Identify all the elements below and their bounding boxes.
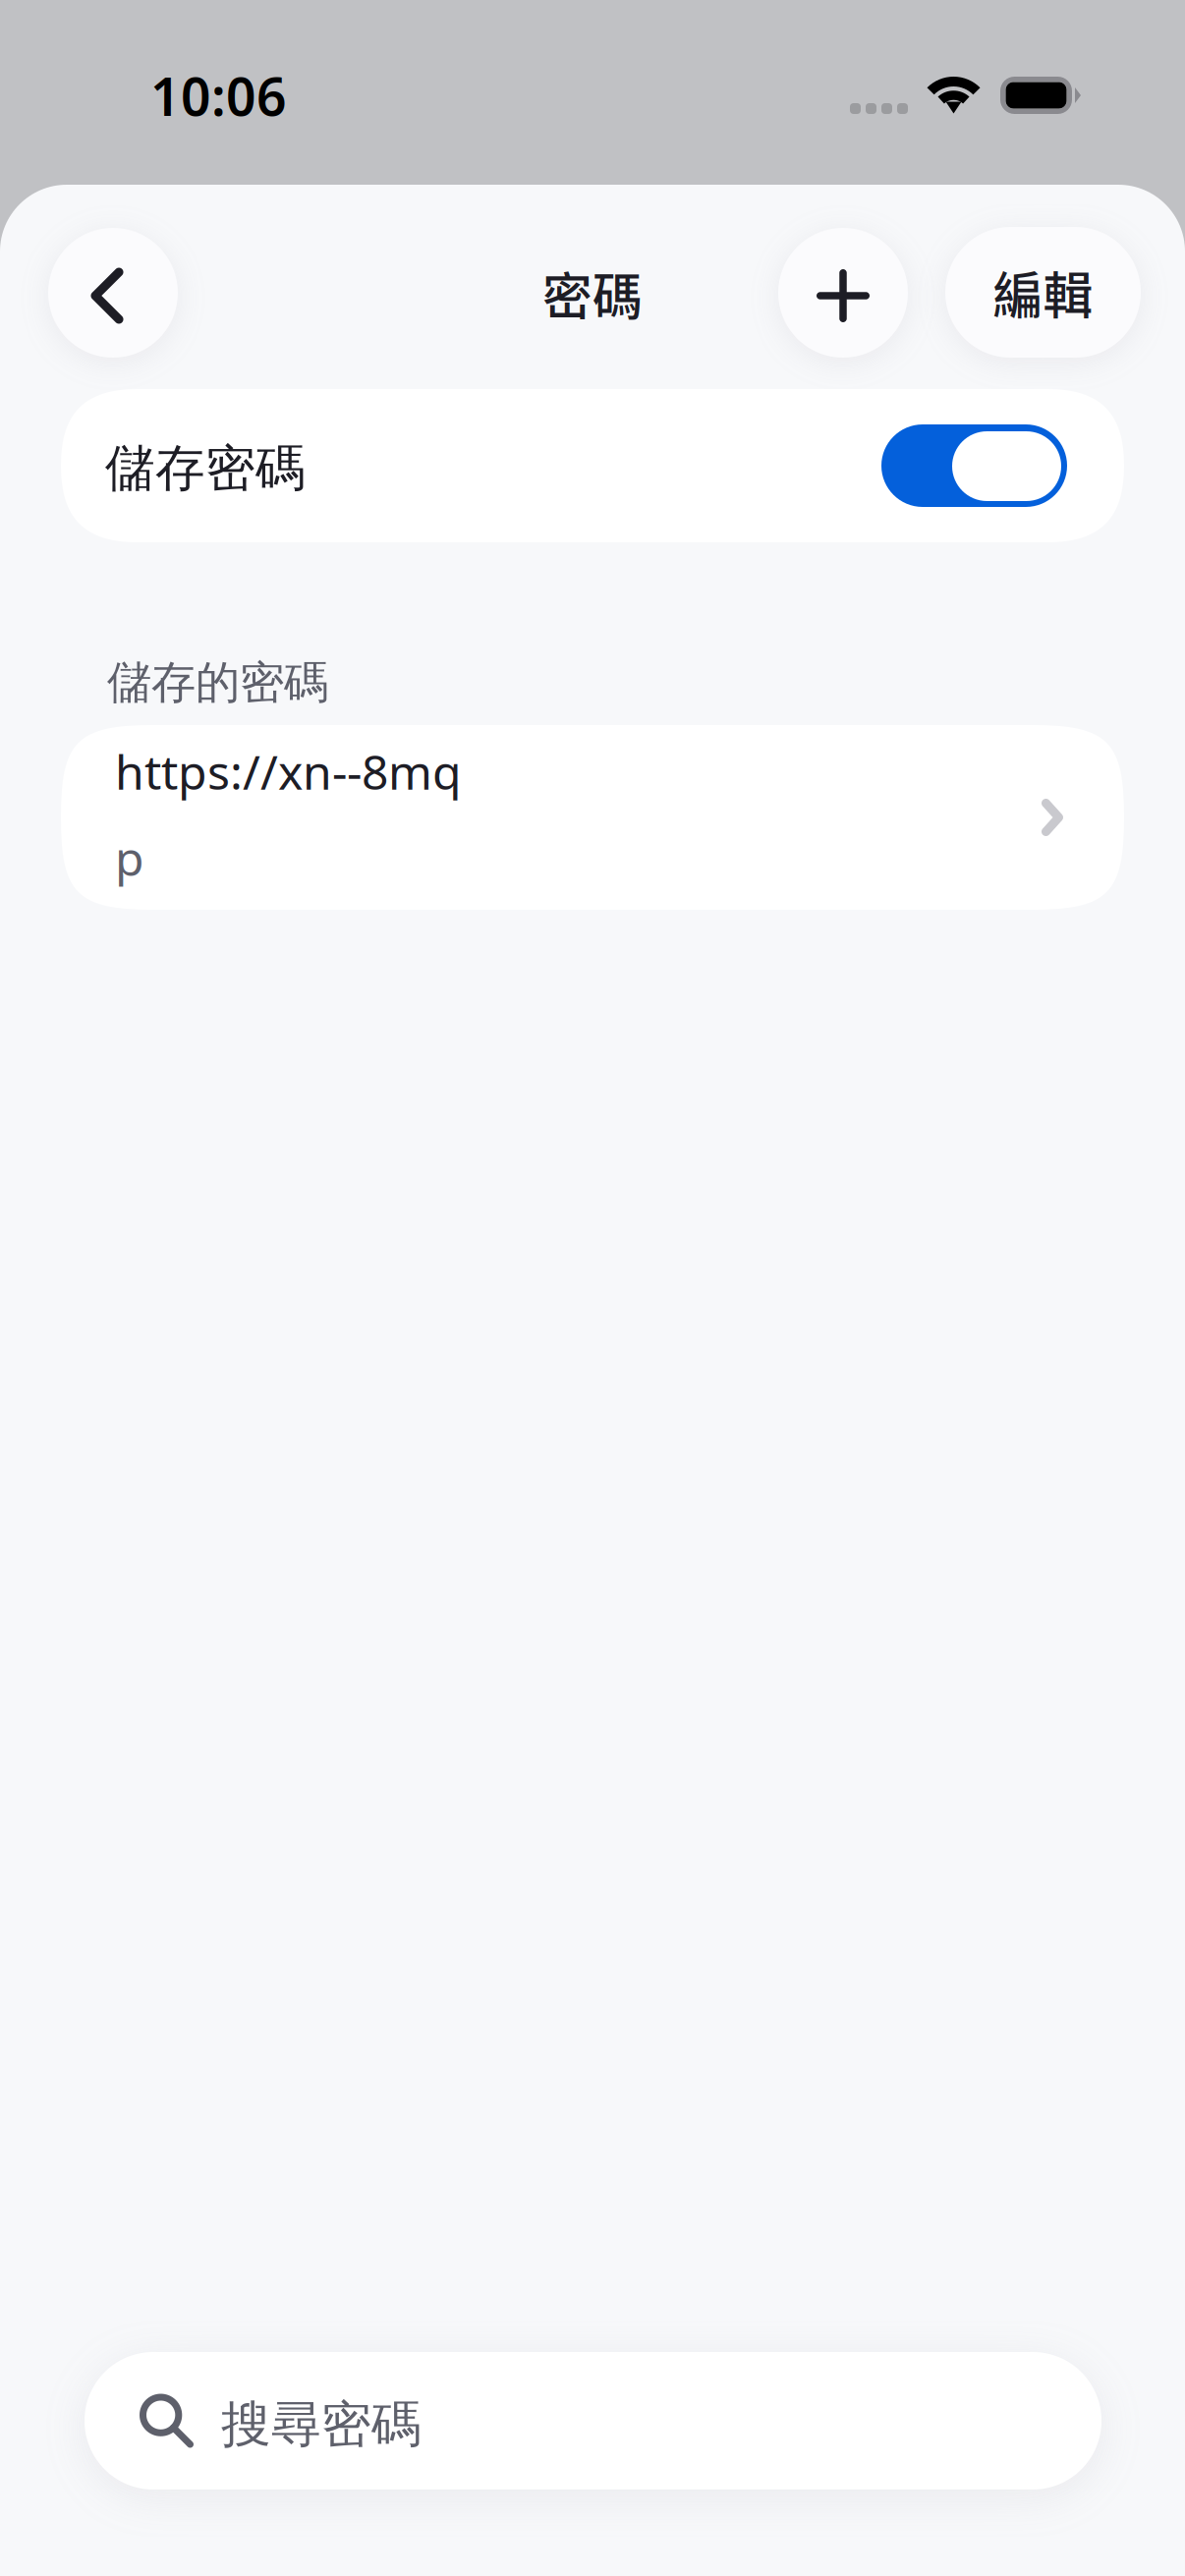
button[interactable]: Add password bbox=[778, 228, 908, 358]
button[interactable]: 儲存密碼 bbox=[61, 389, 1124, 542]
staticText: 儲存密碼 bbox=[105, 438, 306, 499]
staticText: 10:06 bbox=[150, 61, 287, 130]
staticText: 編輯 bbox=[993, 256, 1093, 328]
button[interactable]: 編輯 bbox=[945, 227, 1141, 358]
button[interactable]: Back bbox=[48, 228, 178, 358]
button[interactable]: 搜尋密碼 bbox=[85, 2352, 1101, 2490]
staticText: 搜尋密碼 bbox=[221, 2394, 422, 2455]
button[interactable]: https://xn--8mq bbox=[61, 725, 1124, 910]
staticText: p bbox=[115, 826, 144, 889]
staticText: https://xn--8mq bbox=[115, 740, 462, 803]
staticText: 密碼 bbox=[542, 257, 643, 329]
staticText: 儲存的密碼 bbox=[107, 655, 328, 710]
